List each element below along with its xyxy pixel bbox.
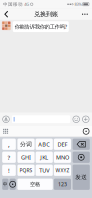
button[interactable]: ?	[2, 152, 16, 163]
button[interactable]: MNO	[54, 152, 71, 163]
staticText: 兑换到账	[34, 10, 58, 18]
staticText: ?	[7, 153, 10, 161]
staticText: 你能告诉我你的工作吗?	[15, 23, 67, 30]
button[interactable]	[9, 179, 16, 190]
button[interactable]	[73, 152, 90, 163]
staticText: 分词	[20, 141, 32, 148]
staticText: MNO	[56, 153, 69, 161]
staticText: 83%	[74, 1, 81, 7]
staticText: 4G	[24, 1, 29, 7]
staticText: PQRS	[19, 167, 32, 174]
staticText: 发送	[75, 174, 87, 181]
button[interactable]: JKL	[36, 152, 53, 163]
staticText: DEF	[57, 140, 67, 148]
staticText: TUV	[39, 166, 49, 174]
button[interactable]: 中	[2, 179, 8, 190]
button[interactable]: 发送	[73, 165, 90, 190]
staticText: 中国移动	[3, 1, 23, 7]
button[interactable]: 空格	[17, 179, 53, 190]
button[interactable]	[73, 139, 90, 150]
button[interactable]: More	[82, 116, 89, 123]
staticText: !	[8, 166, 10, 174]
button[interactable]: PQRS	[17, 165, 35, 176]
button[interactable]: TUV	[36, 165, 53, 176]
staticText: ,	[8, 140, 10, 149]
button[interactable]: DEF	[54, 139, 71, 150]
button[interactable]: 123	[54, 179, 71, 190]
button[interactable]: WXYZ	[54, 165, 71, 176]
staticText: 123	[58, 181, 67, 188]
staticText: ABC	[38, 140, 50, 148]
staticText: WXYZ	[55, 167, 69, 174]
button[interactable]: ABC	[36, 139, 53, 150]
button[interactable]: Input settings	[80, 126, 92, 137]
staticText: 中	[3, 181, 8, 187]
button[interactable]: ,	[2, 139, 16, 150]
staticText: JKL	[40, 153, 48, 161]
staticText: 空格	[30, 181, 40, 188]
button[interactable]: !	[2, 165, 16, 176]
staticText: GHI	[21, 153, 31, 161]
button[interactable]: Voice message	[2, 116, 10, 123]
button[interactable]: Back	[1, 8, 11, 20]
button[interactable]: 分词	[17, 139, 35, 150]
button[interactable]: GHI	[17, 152, 35, 163]
button[interactable]: Keyboard layout	[0, 126, 11, 137]
button[interactable]: More	[79, 8, 91, 20]
button[interactable]: Emoji	[73, 116, 80, 123]
